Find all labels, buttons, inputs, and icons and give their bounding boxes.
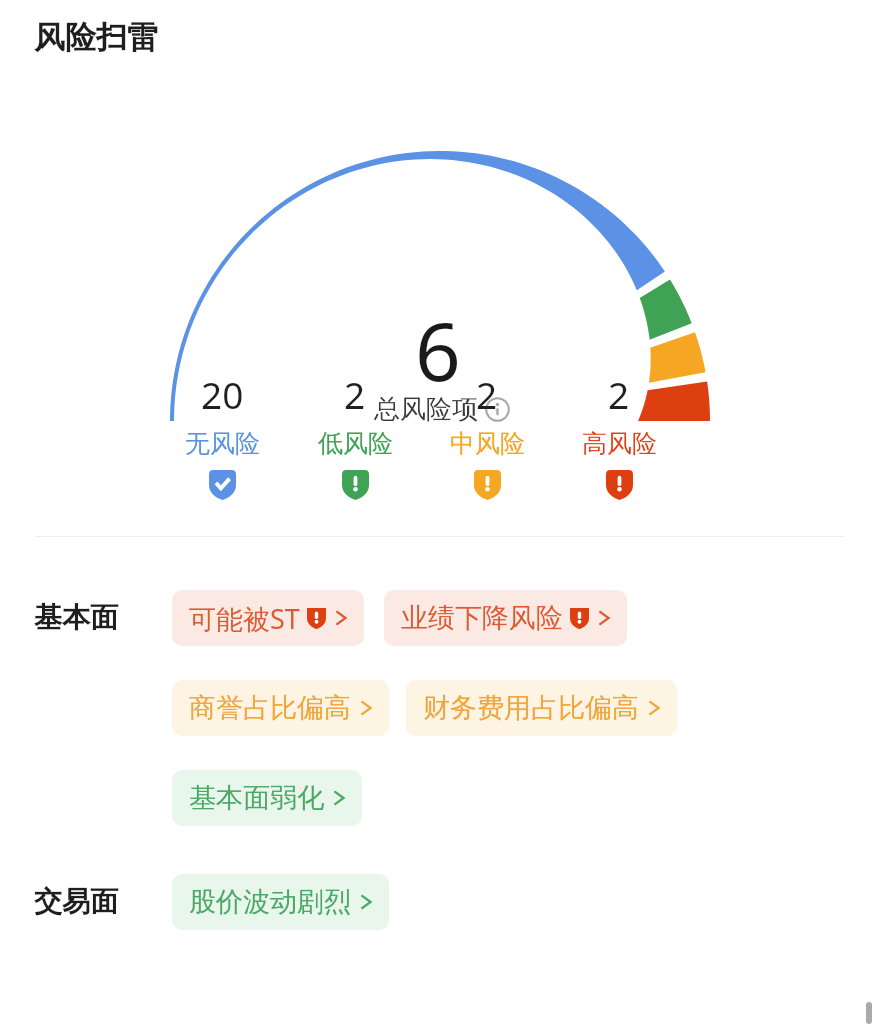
staticText: 基本面 xyxy=(34,600,172,635)
staticText: 基本面弱化 xyxy=(189,781,324,815)
button[interactable]: 2 xyxy=(289,369,421,500)
staticText: 股价波动剧烈 xyxy=(189,885,351,919)
button[interactable]: 商誉占比偏高 xyxy=(172,680,389,736)
staticText: 交易面 xyxy=(34,884,172,919)
staticText: 中风险 xyxy=(450,428,525,459)
button[interactable]: 财务费用占比偏高 xyxy=(406,680,677,736)
button[interactable]: 业绩下降风险 xyxy=(384,590,627,646)
staticText: 可能被ST xyxy=(189,600,300,637)
staticText: 低风险 xyxy=(318,428,393,459)
staticText: 2 xyxy=(476,369,498,419)
staticText: 业绩下降风险 xyxy=(401,601,563,635)
button[interactable]: 风险项说明 xyxy=(485,397,510,422)
staticText: 20 xyxy=(201,369,244,419)
staticText: 总风险项 xyxy=(374,393,478,426)
staticText: 6 xyxy=(415,295,461,404)
button[interactable]: 股价波动剧烈 xyxy=(172,874,389,930)
button[interactable]: 2 xyxy=(553,369,685,500)
staticText: 2 xyxy=(608,369,630,419)
staticText: 商誉占比偏高 xyxy=(189,691,351,725)
button[interactable]: 基本面弱化 xyxy=(172,770,362,826)
staticText: 无风险 xyxy=(185,428,260,459)
staticText: 风险扫雷 xyxy=(34,18,158,57)
staticText: 2 xyxy=(344,369,366,419)
button[interactable]: 可能被ST xyxy=(172,590,364,646)
staticText: 财务费用占比偏高 xyxy=(423,691,639,725)
button[interactable]: 2 xyxy=(421,369,553,500)
staticText: 高风险 xyxy=(582,428,657,459)
button[interactable]: 20 xyxy=(156,369,289,500)
